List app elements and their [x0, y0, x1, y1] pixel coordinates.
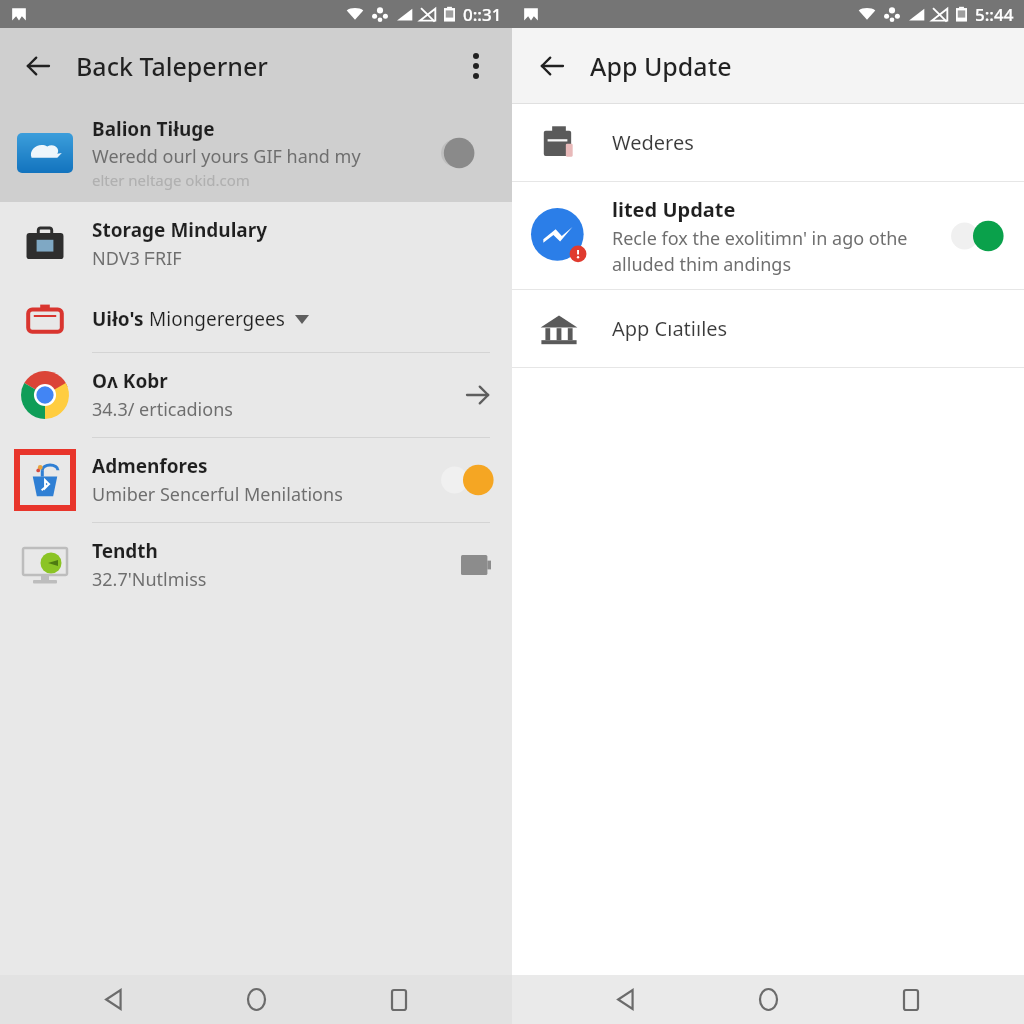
- staticText: 0::31: [463, 3, 502, 26]
- button[interactable]: Back: [597, 975, 655, 1024]
- button[interactable]: More options: [454, 44, 498, 88]
- staticText: Uiło's: [92, 306, 149, 332]
- staticText: Back Taleperner: [76, 49, 268, 83]
- staticText: 32.7'Nutlmiss: [92, 567, 207, 592]
- staticText: Recle fox the exolitimn' in ago othe all…: [612, 226, 908, 276]
- staticText: Admenfores: [92, 453, 208, 479]
- button[interactable]: Back: [528, 42, 576, 90]
- staticText: Oʌ Kobr: [92, 368, 168, 394]
- button[interactable]: Toggle: [440, 136, 498, 170]
- staticText: App Cıatiıles: [612, 315, 728, 342]
- button[interactable]: Tendth: [0, 523, 512, 607]
- staticText: Miongerergees: [149, 306, 285, 332]
- button[interactable]: Back: [85, 975, 143, 1024]
- button[interactable]: Recents: [882, 975, 940, 1024]
- button[interactable]: App Cıatiıles: [512, 290, 1024, 367]
- button[interactable]: Oʌ Kobr: [0, 353, 512, 437]
- button[interactable]: Admenfores: [0, 438, 512, 522]
- button[interactable]: Home: [227, 975, 285, 1024]
- button[interactable]: Balion Tiługe: [0, 104, 512, 202]
- button[interactable]: Toggle: [950, 219, 1008, 253]
- staticText: 5::44: [975, 3, 1014, 26]
- button[interactable]: Wederes: [512, 104, 1024, 181]
- staticText: Wederes: [612, 129, 694, 156]
- staticText: elter neltage okid.com: [92, 170, 250, 190]
- staticText: Weredd ourl yours GIF hand my: [92, 144, 361, 169]
- staticText: App Update: [590, 49, 732, 83]
- staticText: NDV3 ᖴRIF: [92, 246, 182, 271]
- button[interactable]: Back: [14, 42, 62, 90]
- button[interactable]: Toggle: [440, 463, 498, 497]
- staticText: Tendth: [92, 538, 158, 564]
- button[interactable]: Storage Mindulary: [0, 202, 512, 286]
- button[interactable]: Home: [739, 975, 797, 1024]
- button[interactable]: lited Update: [512, 182, 1024, 289]
- button[interactable]: Recents: [370, 975, 428, 1024]
- staticText: Umiber Sencerful Menilations: [92, 482, 343, 507]
- staticText: lited Update: [612, 196, 736, 223]
- staticText: Storage Mindulary: [92, 217, 268, 243]
- staticText: Balion Tiługe: [92, 116, 215, 142]
- staticText: 34.3/ erticadions: [92, 397, 233, 422]
- button[interactable]: Uiło's: [0, 286, 512, 352]
